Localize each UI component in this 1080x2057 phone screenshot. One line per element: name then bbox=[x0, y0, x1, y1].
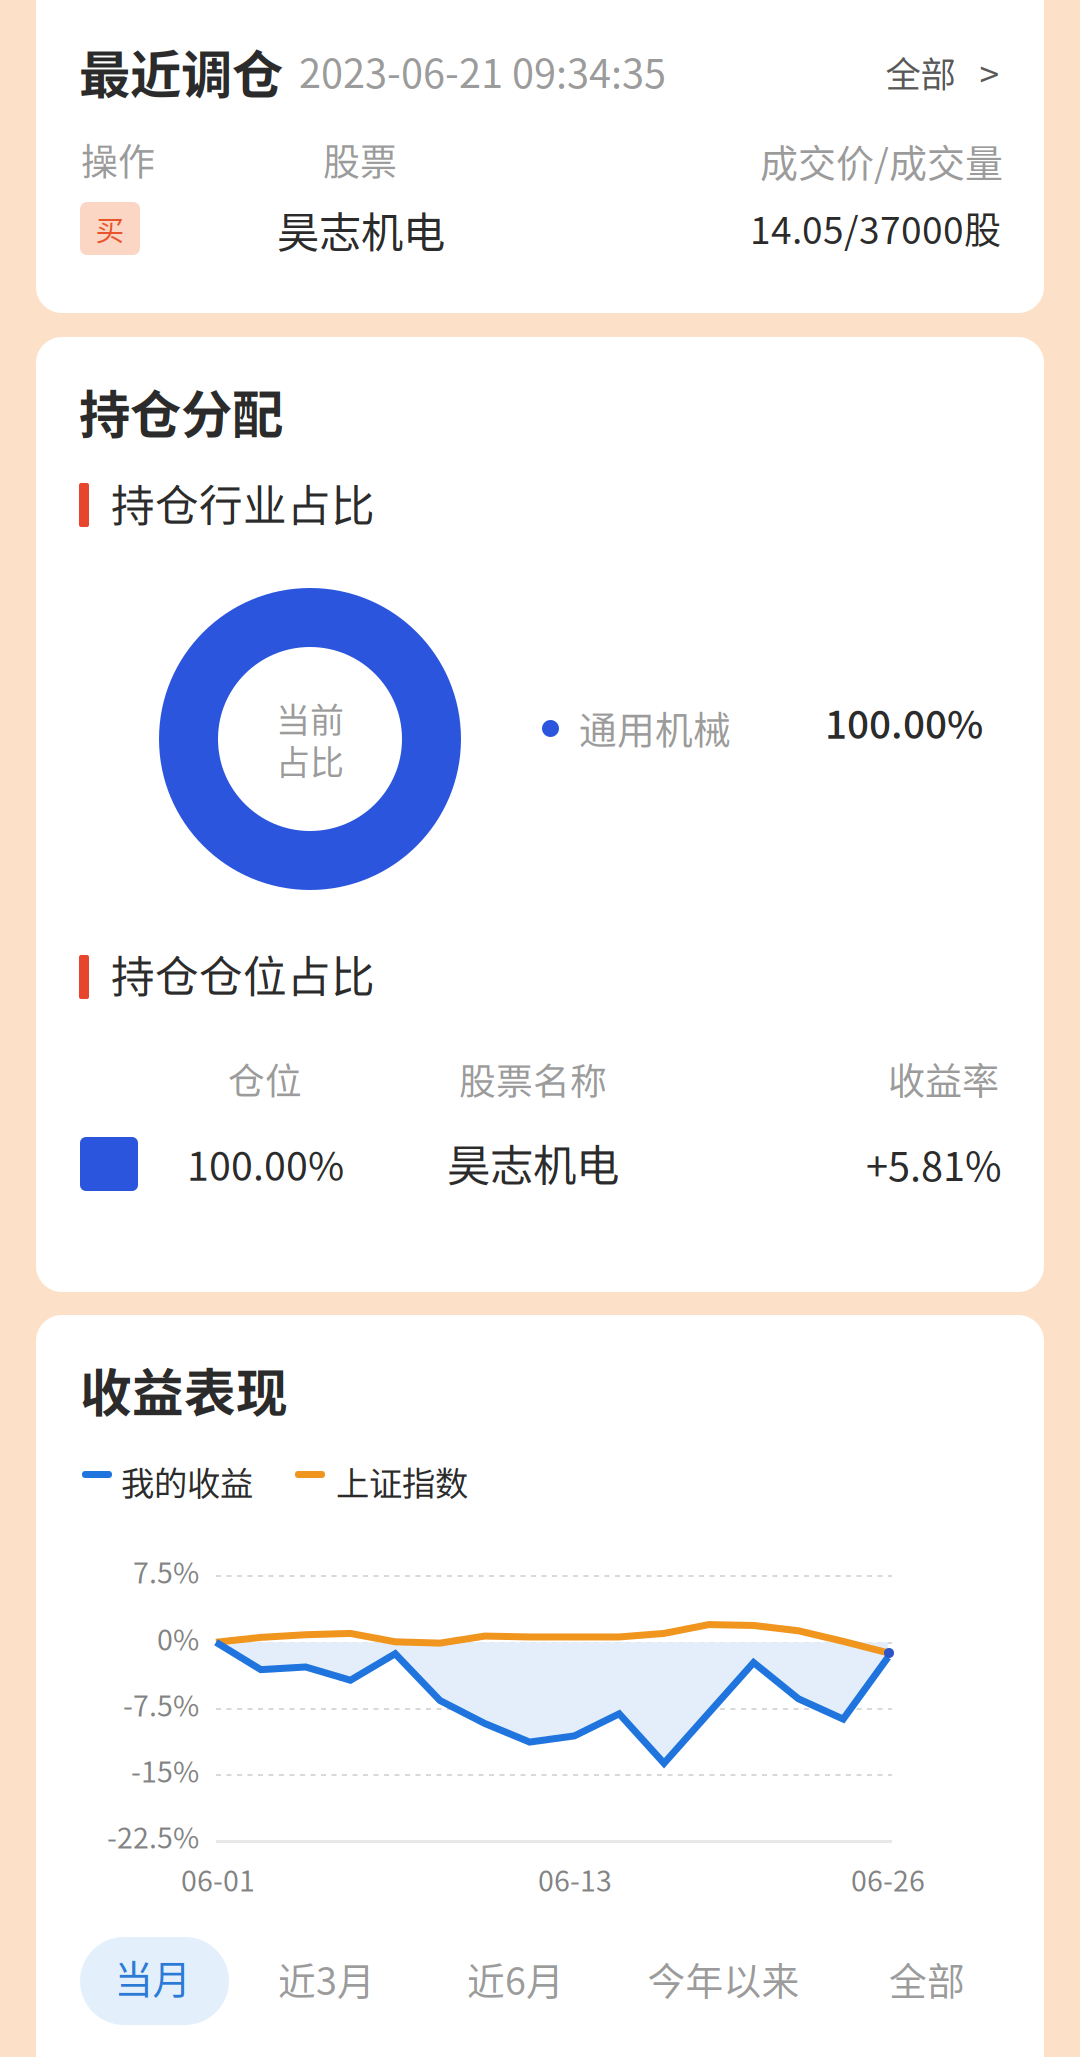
staticText: 成交价/成交量 bbox=[760, 133, 1003, 188]
staticText: 最近调仓 bbox=[79, 34, 283, 108]
staticText: 2023-06-21 09:34:35 bbox=[299, 42, 666, 99]
staticText: -22.5% bbox=[107, 1815, 199, 1857]
staticText: 06-13 bbox=[538, 1858, 612, 1900]
staticText: 持仓仓位占比 bbox=[111, 942, 375, 1005]
staticText: 收益表现 bbox=[80, 1352, 288, 1427]
staticText: 收益率 bbox=[888, 1052, 999, 1106]
staticText: > bbox=[979, 46, 999, 98]
staticText: 0% bbox=[157, 1617, 199, 1659]
staticText: 股票名称 bbox=[459, 1052, 607, 1105]
staticText: 仓位 bbox=[228, 1052, 302, 1105]
staticText: 14.05/37000股 bbox=[750, 201, 1001, 255]
staticText: 持仓分配 bbox=[79, 374, 283, 448]
staticText: 06-01 bbox=[181, 1858, 255, 1900]
button[interactable]: 全部 bbox=[0, 0, 175, 62]
staticText: 100.00% bbox=[187, 1135, 344, 1192]
staticText: 当前 bbox=[276, 693, 344, 742]
staticText: 我的收益 bbox=[121, 1457, 253, 1505]
staticText: 06-26 bbox=[851, 1858, 925, 1900]
staticText: 近6月 bbox=[467, 1951, 564, 2006]
staticText: -7.5% bbox=[123, 1683, 199, 1725]
staticText: -15% bbox=[131, 1749, 199, 1791]
staticText: 持仓行业占比 bbox=[111, 471, 375, 534]
staticText: 昊志机电 bbox=[277, 199, 445, 260]
staticText: 股票 bbox=[323, 133, 397, 186]
button[interactable]: 近6月 bbox=[457, 1939, 574, 2018]
staticText: 当月 bbox=[114, 1949, 190, 2005]
staticText: 近3月 bbox=[278, 1951, 375, 2006]
staticText: 买 bbox=[95, 208, 124, 249]
staticText: 昊志机电 bbox=[447, 1131, 619, 1194]
staticText: 全部 bbox=[885, 46, 955, 98]
staticText: 100.00% bbox=[825, 694, 983, 750]
staticText: +5.81% bbox=[866, 1135, 1002, 1192]
staticText: 上证指数 bbox=[336, 1457, 468, 1505]
button[interactable]: 今年以来 bbox=[636, 1939, 811, 2018]
staticText: 7.5% bbox=[133, 1550, 199, 1592]
button[interactable]: 当月 bbox=[80, 1937, 229, 2025]
staticText: 全部 bbox=[889, 1951, 965, 2006]
button[interactable]: 全部 bbox=[880, 1939, 974, 2018]
staticText: 通用机械 bbox=[579, 700, 731, 755]
staticText: 占比 bbox=[276, 735, 344, 785]
staticText: 操作 bbox=[81, 133, 155, 186]
button[interactable]: 近3月 bbox=[268, 1939, 385, 2018]
staticText: 今年以来 bbox=[647, 1951, 799, 2006]
